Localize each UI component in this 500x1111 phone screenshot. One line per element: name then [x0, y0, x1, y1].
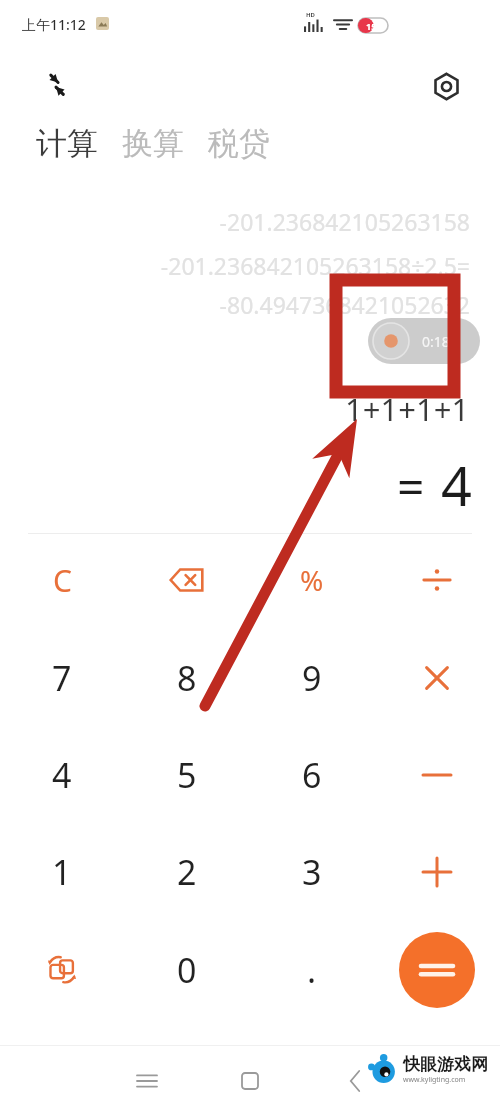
- button[interactable]: Settings: [418, 58, 474, 114]
- staticText: %: [300, 561, 324, 599]
- button[interactable]: 4: [7, 729, 117, 821]
- button[interactable]: Equals: [399, 932, 475, 1008]
- staticText: 换算: [122, 124, 184, 163]
- staticText: 1+1+1+1: [345, 388, 470, 430]
- staticText: 0:18: [422, 332, 450, 351]
- button[interactable]: 1: [7, 826, 117, 918]
- button[interactable]: Back: [330, 1056, 380, 1106]
- button[interactable]: 3: [257, 826, 367, 918]
- staticText: 税贷: [208, 124, 270, 163]
- staticText: 快眼游戏网: [403, 1054, 488, 1075]
- staticText: 5: [177, 752, 197, 798]
- button[interactable]: Backspace: [132, 534, 242, 626]
- staticText: 4: [52, 752, 72, 798]
- button[interactable]: Home: [225, 1056, 275, 1106]
- button[interactable]: %: [257, 534, 367, 626]
- button[interactable]: Multiply: [382, 632, 492, 724]
- staticText: .: [307, 947, 317, 993]
- button[interactable]: 6: [257, 729, 367, 821]
- staticText: =: [397, 453, 425, 518]
- button[interactable]: Screen recording: [368, 318, 480, 364]
- staticText: 2: [177, 849, 197, 895]
- button[interactable]: 5: [132, 729, 242, 821]
- staticText: www.kyligting.com: [403, 1075, 466, 1085]
- staticText: 8: [177, 655, 197, 701]
- staticText: 7: [52, 655, 72, 701]
- button[interactable]: Divide: [382, 534, 492, 626]
- staticText: 3: [302, 849, 322, 895]
- button[interactable]: 0: [132, 924, 242, 1016]
- staticText: 9: [302, 655, 322, 701]
- staticText: 计算: [36, 124, 98, 163]
- button[interactable]: C: [7, 534, 117, 626]
- button[interactable]: 税贷: [206, 120, 272, 167]
- button[interactable]: 换算: [120, 120, 186, 167]
- button[interactable]: Minus: [382, 729, 492, 821]
- staticText: -80.4947368421052632: [219, 289, 470, 320]
- staticText: 上午11:12: [22, 15, 86, 34]
- staticText: 15: [366, 20, 377, 32]
- button[interactable]: Unit conversion: [7, 924, 117, 1016]
- button[interactable]: .: [257, 924, 367, 1016]
- staticText: C: [53, 560, 72, 601]
- button[interactable]: 7: [7, 632, 117, 724]
- button[interactable]: 2: [132, 826, 242, 918]
- button[interactable]: Plus: [382, 826, 492, 918]
- staticText: 1: [52, 849, 72, 895]
- staticText: 4: [441, 448, 472, 522]
- button[interactable]: Collapse: [32, 60, 80, 108]
- staticText: -201.236842105263158÷2.5=: [160, 250, 470, 281]
- staticText: -201.236842105263158: [219, 206, 470, 237]
- staticText: 0: [177, 947, 197, 993]
- button[interactable]: 计算: [34, 120, 100, 167]
- staticText: HD: [306, 11, 315, 19]
- staticText: 6: [302, 752, 322, 798]
- button[interactable]: 9: [257, 632, 367, 724]
- button[interactable]: Recents: [122, 1056, 172, 1106]
- button[interactable]: 8: [132, 632, 242, 724]
